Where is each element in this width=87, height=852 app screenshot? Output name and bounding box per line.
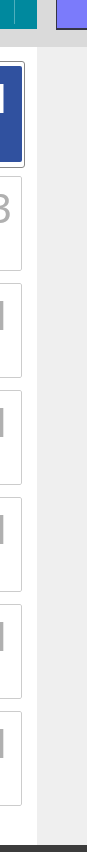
button[interactable]: 3 [0, 176, 22, 271]
staticText: 1 [0, 70, 12, 124]
button[interactable]: Menu [0, 0, 37, 29]
button[interactable]: 1 [0, 497, 22, 592]
staticText: 1 [0, 394, 12, 448]
button[interactable]: 1 [0, 390, 22, 485]
staticText: 1 [0, 287, 12, 341]
staticText: 1 [0, 608, 12, 662]
staticText: 1 [0, 501, 12, 555]
button[interactable]: 1 [0, 711, 22, 806]
staticText: 1 [0, 715, 12, 769]
button[interactable]: Preview panel [56, 0, 87, 29]
button[interactable]: 1 [0, 66, 22, 162]
button[interactable]: 1 [0, 604, 22, 699]
staticText: 3 [0, 180, 12, 234]
button[interactable]: 1 [0, 283, 22, 378]
